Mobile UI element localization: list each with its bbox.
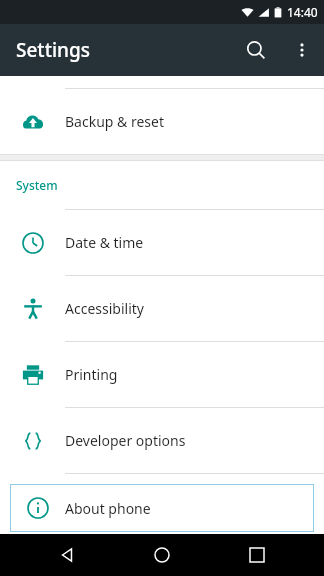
- button[interactable]: Recent apps: [229, 534, 285, 576]
- button[interactable]: Home: [134, 534, 190, 576]
- button[interactable]: About phone: [10, 484, 314, 532]
- button[interactable]: Accessibility: [0, 276, 324, 341]
- button[interactable]: Backup & reset: [0, 89, 324, 154]
- button[interactable]: Back: [39, 534, 95, 576]
- staticText: About phone: [65, 499, 151, 518]
- staticText: Backup & reset: [65, 112, 164, 131]
- staticText: 14:40: [287, 4, 318, 20]
- button[interactable]: Search: [232, 26, 280, 74]
- staticText: Accessibility: [65, 299, 144, 318]
- staticText: Developer options: [65, 431, 186, 450]
- button[interactable]: Date & time: [0, 210, 324, 275]
- staticText: System: [16, 177, 58, 193]
- button[interactable]: Printing: [0, 342, 324, 407]
- staticText: Settings: [16, 37, 90, 63]
- button[interactable]: Developer options: [0, 408, 324, 473]
- staticText: Date & time: [65, 233, 144, 252]
- staticText: Printing: [65, 365, 118, 384]
- button[interactable]: More options: [280, 28, 324, 72]
